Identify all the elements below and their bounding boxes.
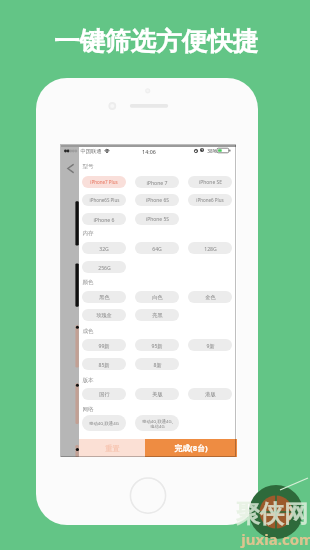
button[interactable]: iPhone6 Plus xyxy=(188,194,232,206)
staticText: 9新 xyxy=(206,342,215,349)
button[interactable]: 玫瑰金 xyxy=(82,309,126,321)
button[interactable]: 重置 xyxy=(79,439,145,457)
staticText: 颜色 xyxy=(82,279,94,286)
button[interactable]: iPhone 7 xyxy=(135,176,179,188)
button[interactable]: 256G xyxy=(82,261,126,273)
staticText: 金色 xyxy=(205,294,216,300)
staticText: 95新 xyxy=(151,342,163,349)
staticText: 85新 xyxy=(98,361,110,368)
staticText: 64G xyxy=(152,245,162,252)
staticText: 移动4G,联通4G, 电信4G xyxy=(142,418,173,429)
staticText: iPhone SE xyxy=(199,179,222,186)
staticText: 重置 xyxy=(105,444,120,453)
staticText: 移动4G,联通4G xyxy=(89,420,119,426)
button[interactable]: iPhone 5S xyxy=(135,213,179,225)
button[interactable]: 128G xyxy=(188,242,232,254)
staticText: 内存 xyxy=(82,230,94,237)
button[interactable]: iPhone7 Plus xyxy=(82,176,126,188)
button[interactable]: 港版 xyxy=(188,388,232,400)
staticText: 港版 xyxy=(205,391,216,397)
button[interactable]: 白色 xyxy=(135,291,179,303)
button[interactable]: 8新 xyxy=(135,358,179,370)
button[interactable]: iPhone6S Plus xyxy=(82,194,126,206)
staticText: 成色 xyxy=(82,328,94,335)
button[interactable]: 移动4G,联通4G xyxy=(82,415,126,431)
staticText: juxia.com xyxy=(241,529,310,549)
staticText: iPhone 6S xyxy=(146,197,169,204)
staticText: 8新 xyxy=(153,361,162,368)
button[interactable]: 9新 xyxy=(188,339,232,351)
staticText: 完成(8台) xyxy=(174,443,208,454)
staticText: 亮黑 xyxy=(152,312,163,318)
staticText: 黑色 xyxy=(99,294,110,300)
staticText: iPhone7 Plus xyxy=(90,179,118,185)
button[interactable]: 32G xyxy=(82,242,126,254)
button[interactable]: iPhone SE xyxy=(188,176,232,188)
staticText: iPhone 5S xyxy=(146,216,169,223)
button[interactable]: iPhone 6 xyxy=(82,213,126,225)
staticText: 32G xyxy=(99,245,109,252)
staticText: 版本 xyxy=(82,377,94,384)
staticText: 14:06 xyxy=(142,148,156,155)
button[interactable]: 85新 xyxy=(82,358,126,370)
staticText: 聚侠网 xyxy=(236,499,308,529)
button[interactable]: iPhone 6S xyxy=(135,194,179,206)
button[interactable]: 国行 xyxy=(82,388,126,400)
staticText: iPhone 7 xyxy=(146,179,168,186)
button[interactable]: 64G xyxy=(135,242,179,254)
staticText: 一键筛选方便快捷 xyxy=(54,25,258,57)
staticText: 美版 xyxy=(152,391,163,397)
staticText: iPhone 6 xyxy=(93,216,115,223)
staticText: 128G xyxy=(204,245,217,252)
button[interactable]: 移动4G,联通4G, 电信4G xyxy=(135,415,179,431)
staticText: 网络 xyxy=(82,406,94,413)
staticText: 玫瑰金 xyxy=(96,312,112,318)
staticText: 中国联通 xyxy=(80,148,102,155)
staticText: 38% xyxy=(207,148,217,155)
button[interactable]: 亮黑 xyxy=(135,309,179,321)
button[interactable]: 美版 xyxy=(135,388,179,400)
button[interactable]: 金色 xyxy=(188,291,232,303)
button[interactable]: 黑色 xyxy=(82,291,126,303)
staticText: iPhone6 Plus xyxy=(196,197,224,203)
staticText: 国行 xyxy=(99,391,110,397)
staticText: 白色 xyxy=(152,294,163,300)
button[interactable]: 95新 xyxy=(135,339,179,351)
staticText: iPhone6S Plus xyxy=(89,197,120,203)
button[interactable]: 99新 xyxy=(82,339,126,351)
button[interactable]: 完成(8台) xyxy=(145,439,237,457)
staticText: 256G xyxy=(98,264,111,271)
staticText: 99新 xyxy=(98,342,110,349)
staticText: 型号 xyxy=(82,163,94,170)
button[interactable]: Back xyxy=(62,157,78,179)
